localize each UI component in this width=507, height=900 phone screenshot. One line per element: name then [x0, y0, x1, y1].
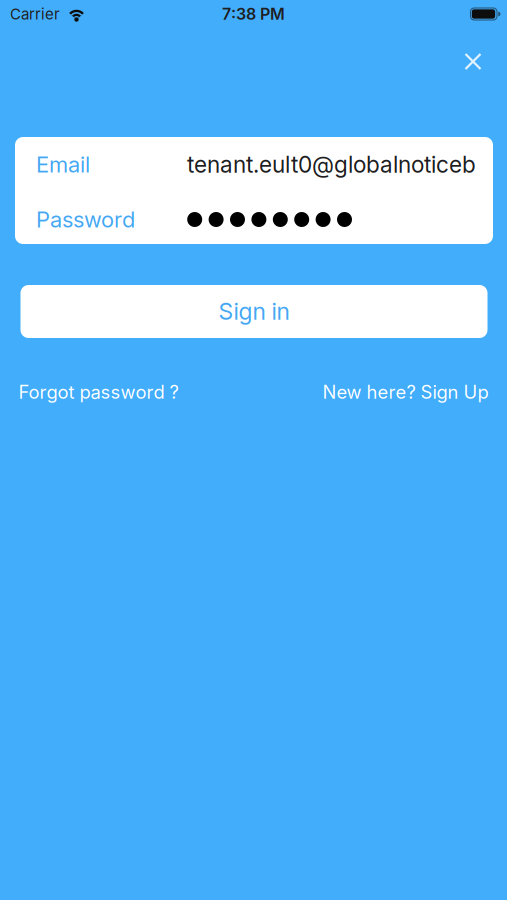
button[interactable]: Password field — [36, 192, 476, 244]
staticText: Password — [36, 206, 135, 233]
staticText: Carrier — [10, 5, 60, 23]
staticText: Sign in — [218, 298, 289, 325]
staticText: Forgot password ? — [18, 381, 178, 403]
staticText: New here? Sign Up — [322, 381, 488, 403]
button[interactable]: Email field — [36, 137, 476, 192]
button[interactable]: Forgot password ? — [18, 381, 178, 403]
staticText: Email — [36, 151, 90, 178]
button[interactable]: Close — [453, 42, 492, 81]
staticText: 7:38 PM — [222, 4, 285, 24]
staticText: tenant.eult0@globalnoticeb — [187, 151, 476, 178]
button[interactable]: Sign in — [20, 285, 487, 338]
button[interactable]: New here? Sign Up — [322, 381, 488, 403]
